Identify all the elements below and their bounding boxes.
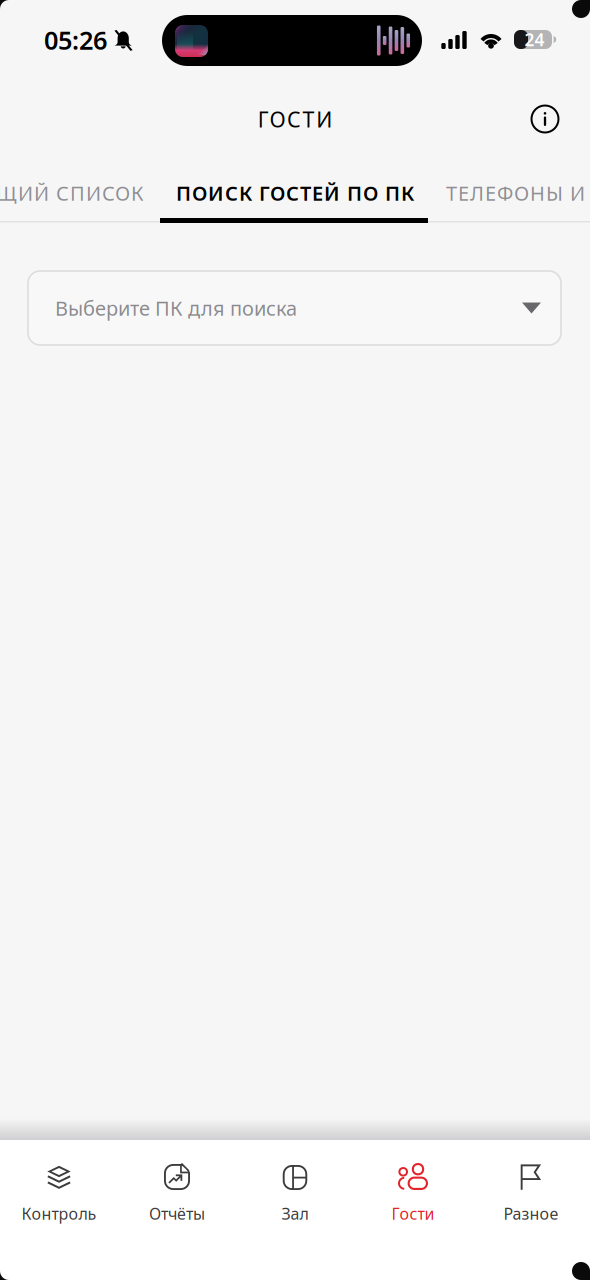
button[interactable]: Выберите ПК для поиска [28, 271, 561, 345]
staticText: Выберите ПК для поиска [55, 295, 297, 321]
staticText: 05:26 [44, 23, 107, 57]
button[interactable]: Зал [236, 1140, 354, 1280]
staticText: Отчёты [149, 1203, 205, 1224]
staticText: Гости [391, 1203, 434, 1224]
staticText: Зал [281, 1203, 308, 1224]
staticText: ТЕЛЕФОНЫ И АДРЕСА [446, 180, 590, 206]
staticText: ОБЩИЙ СПИСОК [0, 180, 144, 206]
staticText: Разное [503, 1203, 558, 1224]
button[interactable]: ТЕЛЕФОНЫ И АДРЕСА [430, 162, 590, 224]
button[interactable]: Отчёты [118, 1140, 236, 1280]
button[interactable]: ПОИСК ГОСТЕЙ ПО ПК [160, 162, 430, 224]
button[interactable]: Гости [354, 1140, 472, 1280]
button[interactable]: Разное [472, 1140, 590, 1280]
button[interactable]: ОБЩИЙ СПИСОК [0, 162, 160, 224]
staticText: Контроль [21, 1203, 96, 1224]
staticText: ПОИСК ГОСТЕЙ ПО ПК [176, 180, 414, 206]
staticText: ГОСТИ [258, 105, 332, 133]
button[interactable]: Контроль [0, 1140, 118, 1280]
staticText: 24 [524, 28, 544, 51]
button[interactable]: Информация [530, 104, 560, 134]
